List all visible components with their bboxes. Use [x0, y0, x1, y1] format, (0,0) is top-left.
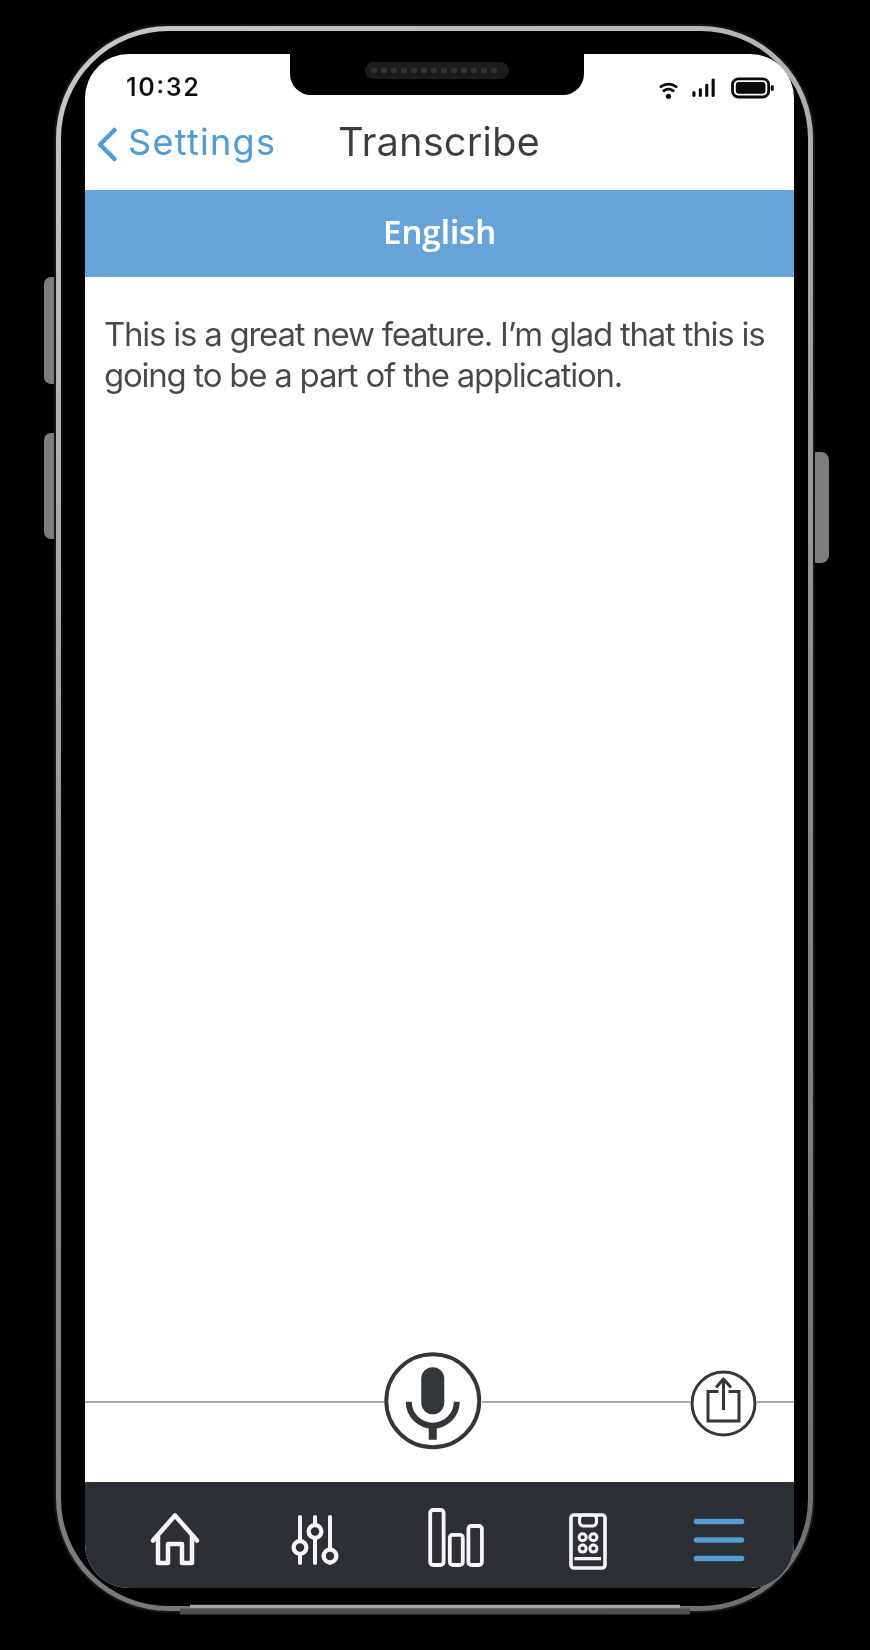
staticText: Settings: [128, 120, 277, 164]
button[interactable]: Settings: [88, 115, 328, 169]
button[interactable]: [141, 1506, 209, 1574]
button[interactable]: [422, 1506, 490, 1574]
staticText: This is a great new feature. I’m glad th…: [104, 314, 765, 394]
button[interactable]: [281, 1506, 349, 1574]
button[interactable]: [384, 1352, 482, 1450]
button[interactable]: [554, 1506, 622, 1574]
button[interactable]: English: [85, 190, 794, 277]
button[interactable]: [690, 1370, 757, 1437]
staticText: Transcribe: [338, 117, 540, 165]
staticText: 10:32: [126, 72, 201, 100]
button[interactable]: [685, 1506, 753, 1574]
staticText: English: [383, 209, 497, 254]
